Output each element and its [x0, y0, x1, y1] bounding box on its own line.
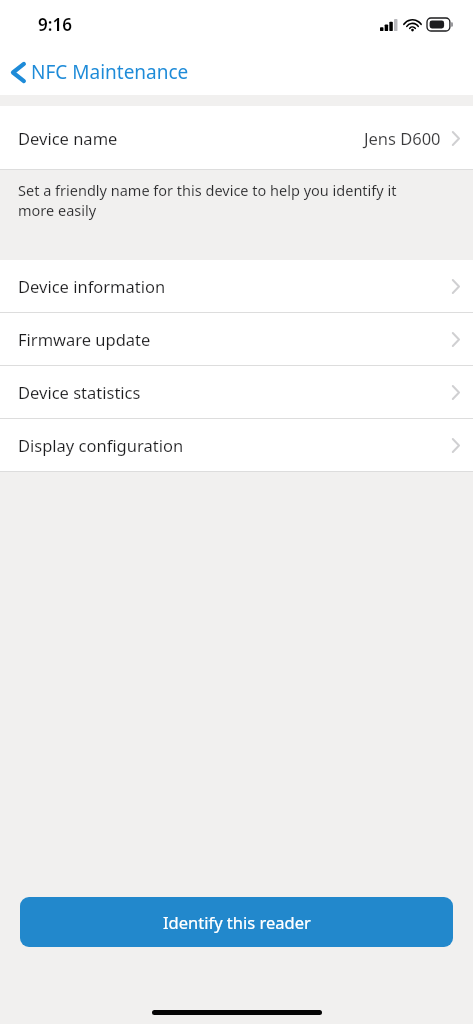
button[interactable]: Firmware update	[0, 313, 473, 365]
staticText: Device name	[18, 127, 118, 149]
staticText: Jens D600	[364, 127, 441, 149]
staticText: Firmware update	[18, 328, 151, 350]
staticText: NFC Maintenance	[31, 59, 189, 85]
button[interactable]: Identify this reader	[20, 897, 453, 947]
button[interactable]: Display configuration	[0, 419, 473, 471]
staticText: 9:16	[38, 13, 72, 36]
staticText: Display configuration	[18, 434, 184, 456]
staticText: Set a friendly name for this device to h…	[18, 180, 433, 220]
button[interactable]: Device statistics	[0, 366, 473, 418]
button[interactable]: Back	[8, 55, 192, 89]
staticText: Identify this reader	[163, 911, 311, 933]
staticText: Device information	[18, 275, 166, 297]
button[interactable]: Device information	[0, 260, 473, 312]
staticText: Device statistics	[18, 381, 141, 403]
button[interactable]: Device name	[0, 106, 473, 169]
